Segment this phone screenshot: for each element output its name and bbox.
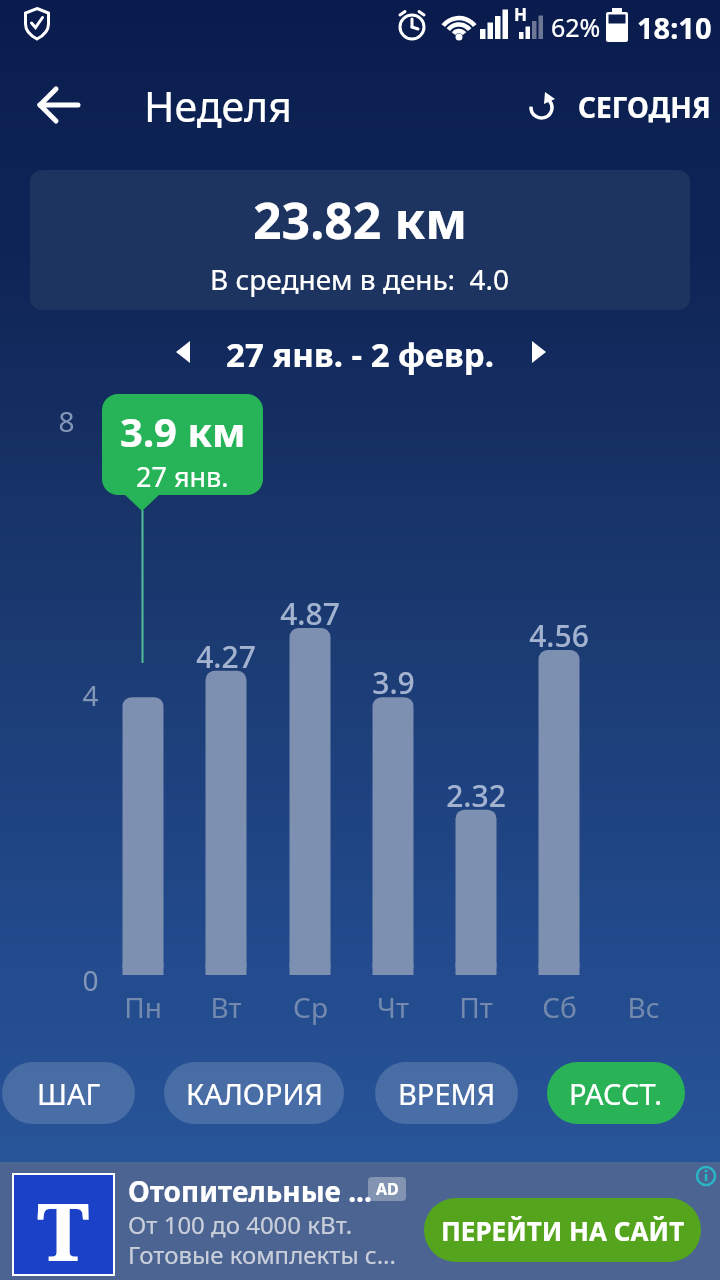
button[interactable]: ШАГ <box>2 1062 135 1124</box>
staticText: Пт <box>459 988 493 1026</box>
staticText: ШАГ <box>37 1074 101 1113</box>
staticText: 3.9 км <box>120 404 246 458</box>
button[interactable]: ПЕРЕЙТИ НА САЙТ <box>424 1198 701 1262</box>
staticText: ПЕРЕЙТИ НА САЙТ <box>441 1213 685 1248</box>
staticText: СЕГОДНЯ <box>578 88 711 126</box>
staticText: 27 янв. <box>136 458 229 495</box>
staticText: 8 <box>58 402 75 440</box>
staticText: 3.9 <box>372 662 415 703</box>
staticText: 23.82 км <box>253 186 468 254</box>
staticText: T <box>37 1175 90 1274</box>
staticText: 0 <box>82 961 99 999</box>
staticText: Готовые комплекты с... <box>128 1238 396 1271</box>
staticText: Чт <box>377 988 409 1026</box>
staticText: 4.27 <box>196 636 256 677</box>
staticText: Ср <box>293 988 328 1026</box>
staticText: 18:10 <box>637 8 712 47</box>
button[interactable] <box>160 328 560 378</box>
staticText: Вт <box>210 988 242 1026</box>
staticText: Пн <box>124 988 162 1026</box>
staticText: 62% <box>551 10 601 44</box>
staticText: КАЛОРИЯ <box>186 1074 323 1113</box>
button[interactable]: 23.82 км <box>30 170 690 310</box>
staticText: РАССТ. <box>569 1074 663 1113</box>
staticText: Отопительные ... <box>128 1172 372 1210</box>
staticText: AD <box>376 1178 399 1200</box>
staticText: Вс <box>627 988 660 1026</box>
button[interactable] <box>28 84 88 128</box>
staticText: Сб <box>542 988 577 1026</box>
staticText: 4 <box>82 676 99 714</box>
staticText: 4.56 <box>529 615 589 656</box>
button[interactable]: ВРЕМЯ <box>375 1062 518 1124</box>
button[interactable]: T <box>0 1162 720 1280</box>
staticText: Неделя <box>144 78 292 134</box>
staticText: 2.32 <box>446 775 506 816</box>
staticText: ВРЕМЯ <box>398 1074 496 1113</box>
staticText: В среднем в день: 4.0 <box>210 260 510 298</box>
staticText: 4.87 <box>280 593 340 634</box>
staticText: H <box>514 3 528 26</box>
staticText: От 100 до 4000 кВт. <box>128 1208 353 1241</box>
button[interactable]: КАЛОРИЯ <box>164 1062 344 1124</box>
button[interactable] <box>516 80 716 130</box>
staticText: 27 янв. - 2 февр. <box>226 332 494 377</box>
button[interactable]: РАССТ. <box>547 1062 685 1124</box>
